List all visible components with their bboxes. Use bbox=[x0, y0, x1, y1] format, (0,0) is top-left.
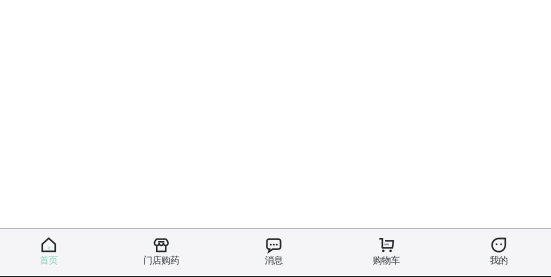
button[interactable]: 门店购药 bbox=[105, 229, 217, 275]
button[interactable]: 首页 bbox=[0, 229, 105, 275]
staticText: 门店购药 bbox=[143, 255, 179, 266]
staticText: 消息 bbox=[265, 255, 283, 266]
staticText: 购物车 bbox=[373, 255, 400, 266]
button[interactable]: 购物车 bbox=[330, 229, 442, 275]
staticText: 首页 bbox=[40, 255, 58, 266]
button[interactable]: 消息 bbox=[217, 229, 330, 275]
staticText: 我的 bbox=[490, 255, 508, 266]
button[interactable]: 我的 bbox=[442, 229, 551, 275]
